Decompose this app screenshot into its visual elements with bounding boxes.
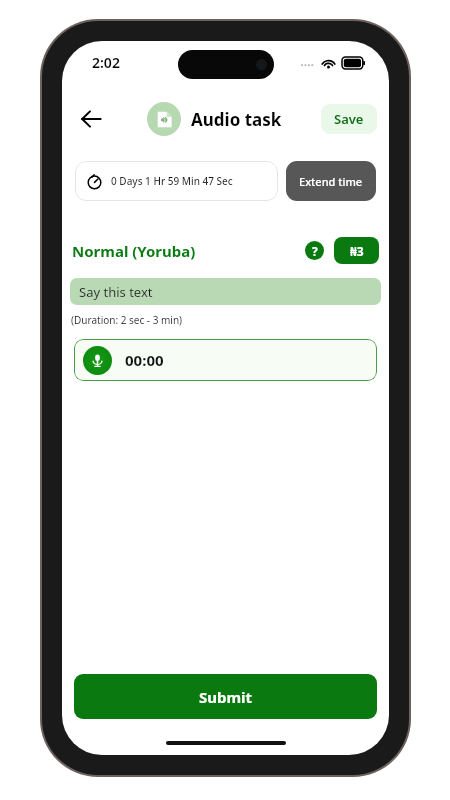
button[interactable]: Record: [74, 339, 377, 381]
staticText: Audio task: [191, 108, 282, 131]
staticText: Normal (Yoruba): [72, 241, 196, 261]
button[interactable]: 0 Days 1 Hr 59 Min 47 Sec: [75, 161, 278, 201]
staticText: 2:02: [92, 53, 120, 72]
button[interactable]: Extend time: [286, 161, 376, 201]
staticText: (Duration: 2 sec - 3 min): [71, 313, 183, 327]
button[interactable]: Help: [304, 240, 325, 261]
other: Record: [83, 346, 112, 375]
staticText: Extend time: [299, 174, 363, 189]
staticText: Submit: [199, 687, 253, 707]
button[interactable]: Save: [321, 104, 377, 134]
staticText: ?: [312, 243, 318, 259]
staticText: ₦3: [350, 243, 364, 259]
button[interactable]: ₦3: [334, 237, 379, 264]
staticText: 00:00: [125, 350, 164, 370]
staticText: 0 Days 1 Hr 59 Min 47 Sec: [111, 174, 233, 188]
staticText: Say this text: [79, 283, 153, 301]
button[interactable]: Back: [74, 102, 108, 136]
staticText: Save: [334, 110, 364, 128]
button[interactable]: Submit: [74, 674, 377, 719]
